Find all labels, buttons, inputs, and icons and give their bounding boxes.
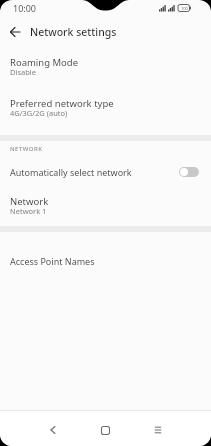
staticText: 100: [181, 6, 188, 11]
staticText: Network settings: [30, 25, 117, 39]
button[interactable]: Network: [0, 188, 211, 226]
button[interactable]: [138, 414, 178, 446]
staticText: Access Point Names: [10, 255, 95, 267]
staticText: 4G/3G/2G (auto): [10, 108, 68, 118]
staticText: Network: [10, 195, 49, 208]
button[interactable]: Preferred network type: [0, 91, 211, 135]
staticText: Network 1: [10, 206, 47, 216]
staticText: NETWORK: [10, 145, 43, 153]
button[interactable]: [0, 17, 30, 47]
staticText: Automatically select network: [10, 166, 179, 178]
button[interactable]: Automatically select network: [0, 156, 211, 188]
button[interactable]: [33, 414, 73, 446]
button[interactable]: Access Point Names: [0, 232, 211, 290]
staticText: Preferred network type: [10, 97, 114, 110]
button[interactable]: Roaming Mode: [0, 48, 211, 91]
button[interactable]: [85, 414, 125, 446]
staticText: 10:00: [13, 2, 37, 14]
staticText: Roaming Mode: [10, 56, 79, 69]
staticText: Disable: [10, 67, 36, 77]
